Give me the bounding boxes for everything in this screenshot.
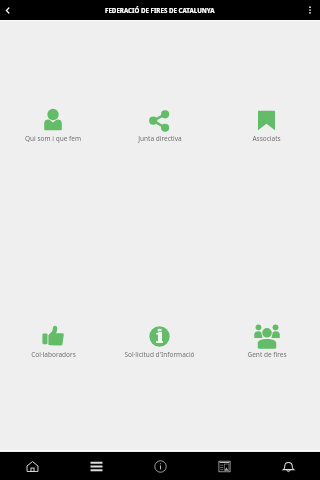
staticText: Junta directiva (138, 134, 182, 143)
button[interactable]: More options (300, 0, 320, 20)
button[interactable]: Gent de fires (213, 321, 320, 363)
button[interactable]: Back (0, 0, 15, 20)
button[interactable]: News (192, 452, 256, 480)
button[interactable]: Information (128, 452, 192, 480)
button[interactable]: Junta directiva (106, 105, 213, 147)
staticText: Associats (252, 134, 281, 143)
staticText: Qui som i que fem (25, 134, 81, 143)
button[interactable]: Notifications (256, 452, 320, 480)
button[interactable]: Col·laboradors (0, 321, 106, 363)
button[interactable]: Associats (213, 105, 320, 147)
staticText: FEDERACIÓ DE FIRES DE CATALUNYA (105, 6, 215, 14)
staticText: Sol·licitud d'Informació (124, 350, 195, 359)
staticText: Gent de fires (247, 350, 287, 359)
button[interactable]: Qui som i que fem (0, 105, 106, 147)
button[interactable]: Menu (64, 452, 128, 480)
button[interactable]: Home (0, 452, 64, 480)
staticText: Col·laboradors (31, 350, 76, 359)
button[interactable]: Sol·licitud d'Informació (106, 321, 213, 363)
